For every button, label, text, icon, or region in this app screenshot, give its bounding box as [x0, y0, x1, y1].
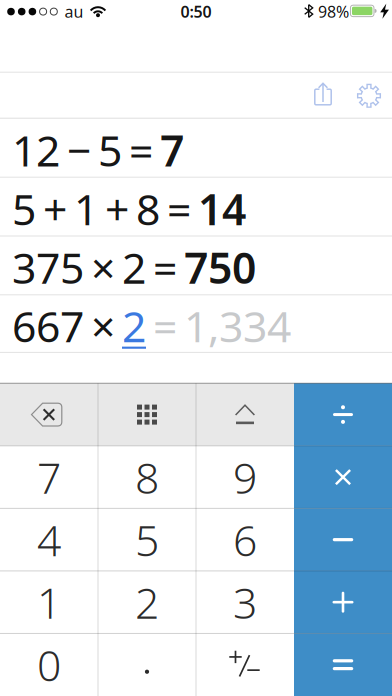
button[interactable]: 7 — [0, 446, 98, 508]
button[interactable]: Plus minus — [196, 633, 294, 696]
button[interactable]: Delete — [0, 383, 98, 446]
button[interactable]: Hide keypad — [196, 383, 294, 446]
button[interactable]: 8 — [98, 446, 196, 508]
button[interactable]: 5 + 1 + 8 = — [0, 178, 392, 236]
staticText: 0 — [37, 636, 61, 693]
button[interactable]: Decimal point — [98, 633, 196, 696]
button[interactable]: More functions — [98, 383, 196, 446]
button[interactable]: 5 — [98, 508, 196, 571]
staticText: 7 — [37, 449, 61, 505]
staticText: 0:50 — [180, 1, 211, 22]
staticText: 667 × — [12, 297, 122, 354]
button[interactable]: Settings — [347, 73, 391, 117]
staticText: 7 — [160, 122, 184, 178]
button[interactable]: 0 — [0, 633, 98, 696]
button[interactable]: 1 — [0, 571, 98, 633]
button[interactable]: Multiply — [294, 446, 392, 508]
button[interactable]: Divide — [294, 383, 392, 446]
button[interactable]: 2 — [98, 571, 196, 633]
staticText: 8 — [135, 449, 159, 505]
staticText: 375 × 2 = — [12, 239, 184, 296]
button[interactable]: 4 — [0, 508, 98, 571]
button[interactable]: Add — [294, 571, 392, 633]
staticText: 14 — [198, 180, 246, 237]
button[interactable]: 667 × — [0, 295, 392, 352]
staticText: 12 − 5 = — [12, 122, 160, 178]
staticText: 5 + 1 + 8 = — [12, 180, 198, 237]
staticText: 2 — [135, 574, 159, 631]
button[interactable]: 9 — [196, 446, 294, 508]
staticText: 4 — [37, 511, 61, 568]
staticText: 5 — [135, 511, 159, 568]
staticText: 3 — [233, 574, 257, 631]
button[interactable]: Equals — [294, 633, 392, 696]
staticText: au — [64, 1, 83, 22]
button[interactable]: 12 − 5 = — [0, 119, 392, 177]
button[interactable]: 3 — [196, 571, 294, 633]
button[interactable]: 375 × 2 = — [0, 236, 392, 294]
staticText: 2 — [122, 297, 146, 354]
button[interactable]: Share — [301, 73, 345, 117]
staticText: 1 — [37, 574, 61, 631]
staticText: 9 — [233, 449, 257, 505]
staticText: = 1,334 — [146, 297, 291, 354]
staticText: 750 — [184, 239, 256, 296]
staticText: 98% — [318, 1, 349, 22]
staticText: 6 — [233, 511, 257, 568]
button[interactable]: Subtract — [294, 508, 392, 571]
button[interactable]: 6 — [196, 508, 294, 571]
